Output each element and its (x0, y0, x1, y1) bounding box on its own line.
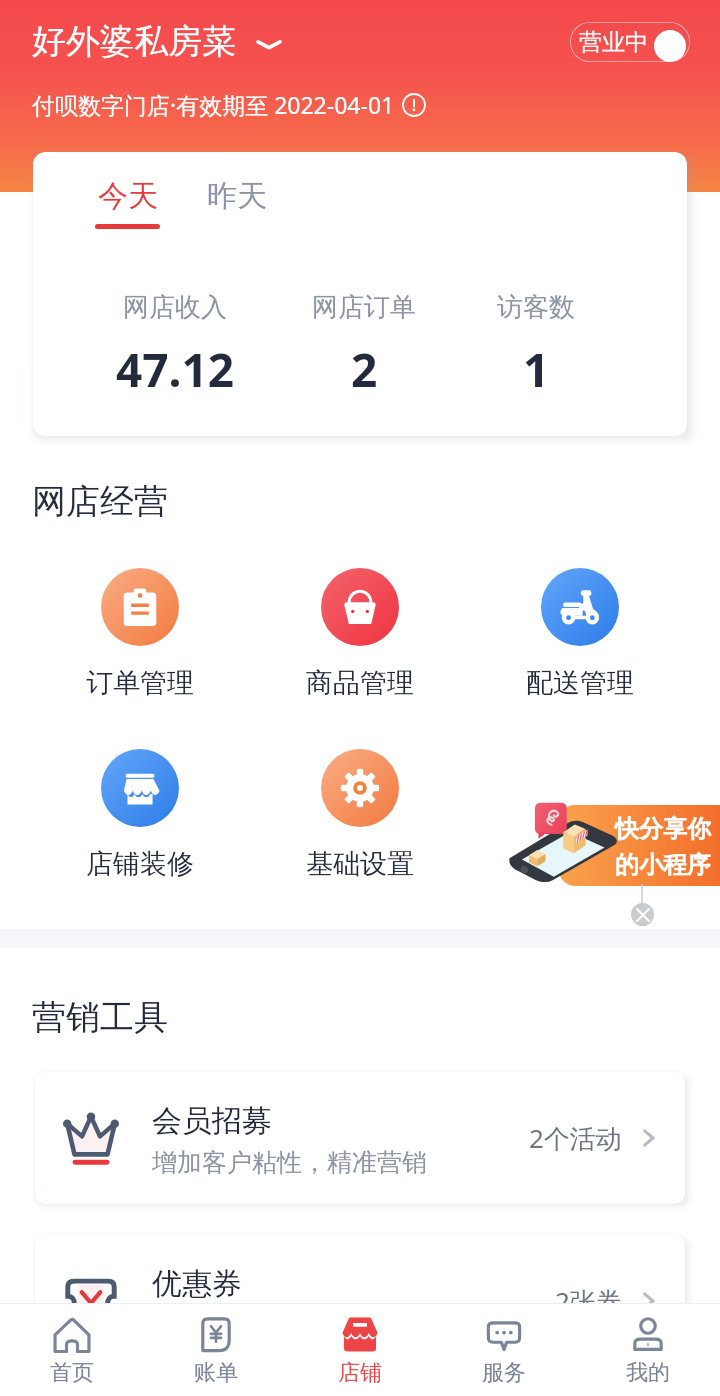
button[interactable]: 昨天 (207, 177, 267, 215)
staticText: 47.12 (116, 338, 235, 401)
button[interactable]: 配送管理 (470, 568, 690, 700)
staticText: 2张券 (555, 1283, 622, 1319)
staticText: 的小程序 (615, 850, 711, 880)
staticText: 1 (523, 338, 550, 401)
staticText: 店铺装修 (86, 847, 194, 881)
staticText: 营销工具 (32, 996, 168, 1039)
button[interactable]: 店铺 (288, 1313, 432, 1387)
button[interactable]: 基础设置 (250, 749, 470, 881)
staticText: 访客数 (497, 291, 575, 324)
button[interactable]: 订单管理 (30, 568, 250, 700)
staticText: 2个活动 (529, 1120, 622, 1156)
staticText: 订单管理 (86, 666, 194, 700)
button[interactable]: 营业中 (570, 22, 690, 62)
button[interactable]: 会员招募 (35, 1072, 685, 1204)
button[interactable]: 账单 (144, 1313, 288, 1387)
staticText: 今天 (98, 177, 158, 215)
staticText: 服务 (482, 1359, 526, 1387)
button[interactable]: 快分享你 (559, 805, 720, 886)
staticText: 账单 (194, 1359, 238, 1387)
staticText: 好外婆私房菜 (32, 20, 236, 63)
staticText: 首页 (50, 1359, 94, 1387)
staticText: 增加客户粘性，精准营销 (152, 1147, 427, 1178)
staticText: 配送管理 (526, 666, 634, 700)
button[interactable]: 商品管理 (250, 568, 470, 700)
button[interactable]: 好外婆私房菜 (32, 20, 282, 63)
button[interactable]: 服务 (432, 1313, 576, 1387)
button[interactable]: 优惠券 (35, 1235, 685, 1367)
staticText: 会员招募 (152, 1102, 272, 1140)
staticText: 快分享你 (615, 814, 711, 844)
staticText: 付呗数字门店·有效期至 2022-04-01 (32, 89, 395, 120)
button[interactable]: 店铺装修 (30, 749, 250, 881)
staticText: 基础设置 (306, 847, 414, 881)
staticText: 商品管理 (306, 666, 414, 700)
staticText: 我的 (626, 1359, 670, 1387)
staticText: 店铺 (338, 1359, 382, 1387)
button[interactable]: 关闭 (631, 903, 654, 926)
button[interactable]: 我的 (576, 1313, 720, 1387)
staticText: 2 (351, 338, 378, 401)
staticText: 网店收入 (123, 291, 227, 324)
button[interactable]: 首页 (0, 1313, 144, 1387)
staticText: 网店经营 (32, 480, 168, 523)
staticText: 优惠券 (152, 1265, 242, 1303)
button[interactable]: 今天 (95, 177, 160, 229)
staticText: 网店订单 (312, 291, 416, 324)
staticText: 营业中 (579, 28, 648, 57)
